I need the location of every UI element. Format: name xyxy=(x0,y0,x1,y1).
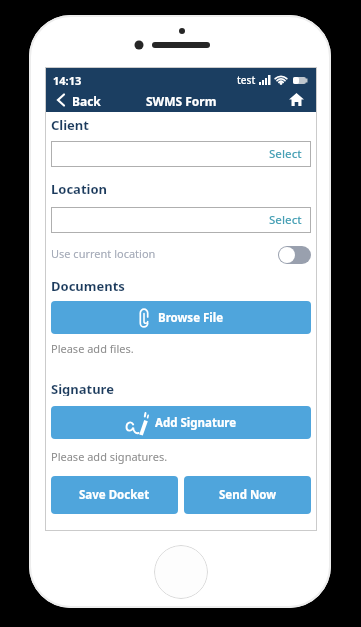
staticText: 14:13 xyxy=(53,73,82,88)
staticText: Documents xyxy=(51,277,125,293)
staticText: Client xyxy=(51,116,89,132)
staticText: Please add files. xyxy=(51,341,134,356)
staticText: Use current location xyxy=(51,246,156,261)
staticText: Select xyxy=(269,146,302,162)
staticText: Select xyxy=(269,212,302,228)
staticText: Back xyxy=(72,93,101,109)
staticText: Location xyxy=(51,180,107,196)
staticText: Please add signatures. xyxy=(51,449,168,464)
staticText: Save Docket xyxy=(79,487,150,503)
staticText: SWMS Form xyxy=(146,93,217,109)
staticText: Browse File xyxy=(158,310,224,326)
staticText: Add Signature xyxy=(155,415,237,431)
staticText: Send Now xyxy=(219,487,277,503)
staticText: Signature xyxy=(51,380,114,396)
staticText: test xyxy=(237,73,256,87)
